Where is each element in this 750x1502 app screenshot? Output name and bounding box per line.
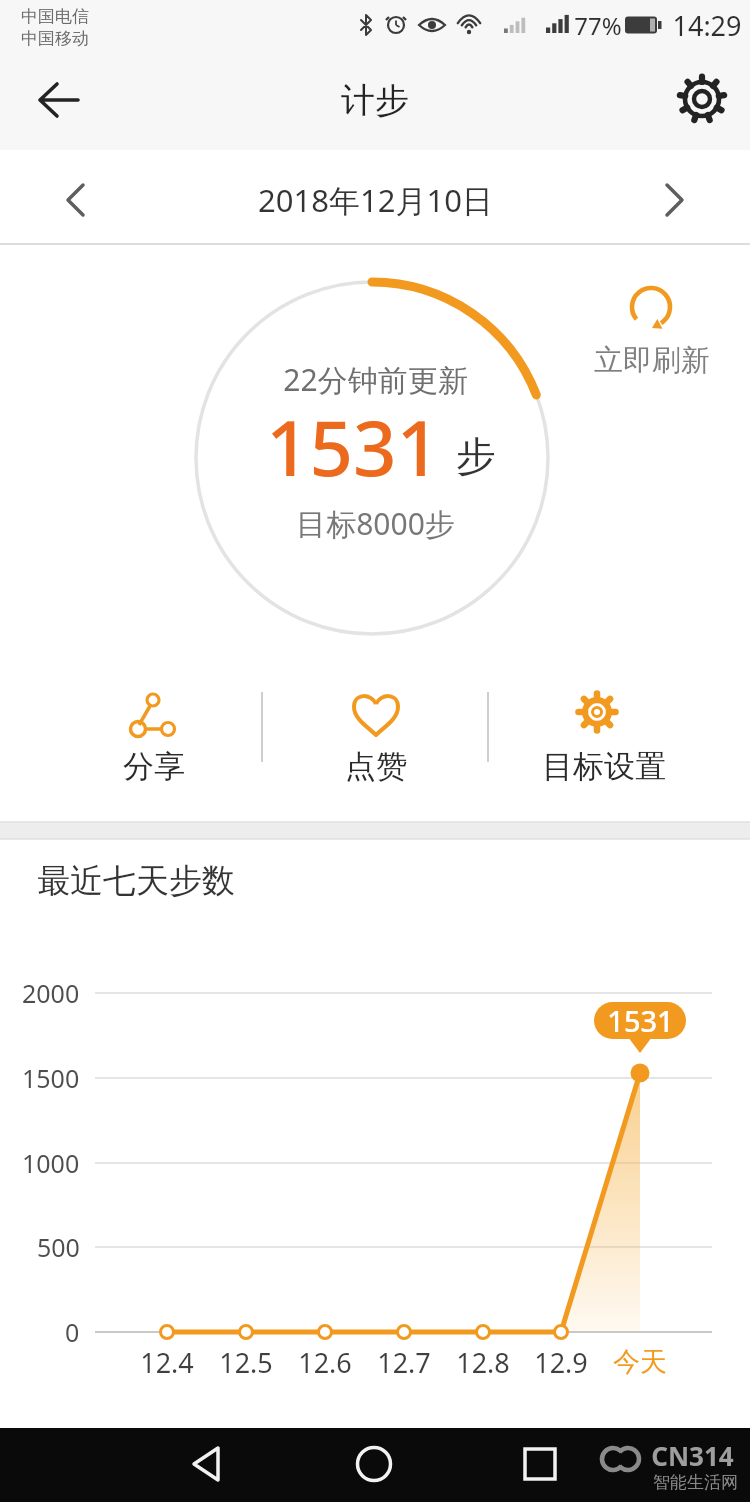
staticText: 22分钟前更新 bbox=[283, 359, 468, 400]
staticText: 12.4 bbox=[140, 1344, 194, 1381]
staticText: 12.6 bbox=[298, 1344, 352, 1381]
staticText: 1500 bbox=[22, 1061, 80, 1095]
staticText: 1531 bbox=[266, 395, 440, 499]
staticText: 目标8000步 bbox=[296, 503, 455, 544]
staticText: 1531 bbox=[607, 1001, 674, 1040]
staticText: 步 bbox=[456, 431, 496, 481]
staticText: 500 bbox=[37, 1230, 80, 1264]
button[interactable] bbox=[20, 60, 100, 140]
staticText: 分享 bbox=[123, 747, 185, 786]
staticText: 12.5 bbox=[219, 1344, 273, 1381]
staticText: 77% bbox=[574, 9, 622, 42]
button[interactable] bbox=[80, 680, 230, 790]
button[interactable] bbox=[492, 1435, 587, 1497]
button[interactable] bbox=[510, 680, 695, 790]
button[interactable] bbox=[630, 160, 720, 240]
staticText: 中国电信 bbox=[21, 6, 89, 27]
staticText: 今天 bbox=[613, 1345, 667, 1379]
button[interactable] bbox=[300, 680, 450, 790]
button[interactable] bbox=[327, 1435, 422, 1497]
button[interactable] bbox=[160, 1435, 255, 1497]
button[interactable] bbox=[30, 160, 120, 240]
button[interactable] bbox=[580, 270, 725, 380]
staticText: 2018年12月10日 bbox=[258, 179, 493, 221]
staticText: 目标设置 bbox=[542, 747, 666, 786]
staticText: 0 bbox=[65, 1315, 80, 1349]
staticText: 计步 bbox=[341, 79, 409, 122]
staticText: 1000 bbox=[22, 1146, 80, 1180]
button[interactable] bbox=[0, 1428, 750, 1502]
staticText: 2000 bbox=[22, 976, 80, 1010]
staticText: CN314 bbox=[651, 1438, 734, 1473]
staticText: 智能生活网 bbox=[653, 1472, 738, 1493]
staticText: 14:29 bbox=[672, 7, 742, 44]
staticText: 立即刷新 bbox=[594, 342, 710, 379]
button[interactable] bbox=[660, 60, 740, 140]
staticText: 中国移动 bbox=[21, 28, 89, 49]
staticText: 点赞 bbox=[345, 747, 407, 786]
staticText: 12.8 bbox=[456, 1344, 510, 1381]
staticText: 最近七天步数 bbox=[37, 860, 235, 902]
staticText: 12.7 bbox=[377, 1344, 431, 1381]
staticText: 12.9 bbox=[534, 1344, 588, 1381]
